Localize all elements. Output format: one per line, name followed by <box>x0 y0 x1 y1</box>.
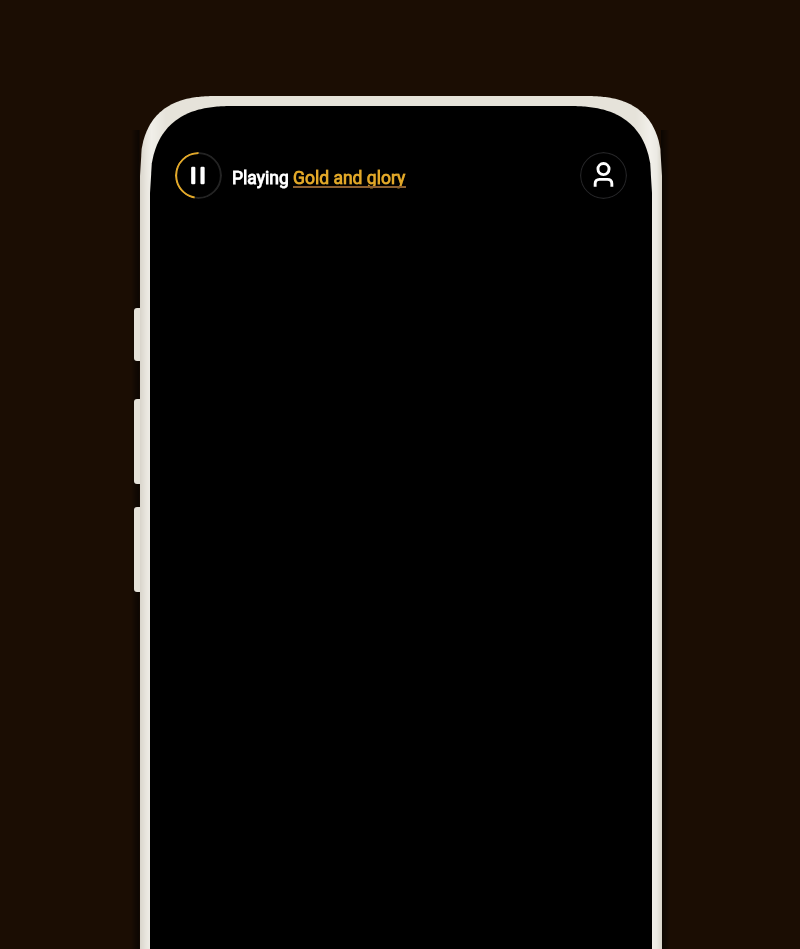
button[interactable]: Account <box>580 152 627 199</box>
button[interactable]: Pause <box>175 152 222 199</box>
staticText: Playing Gold and glory <box>232 168 406 189</box>
